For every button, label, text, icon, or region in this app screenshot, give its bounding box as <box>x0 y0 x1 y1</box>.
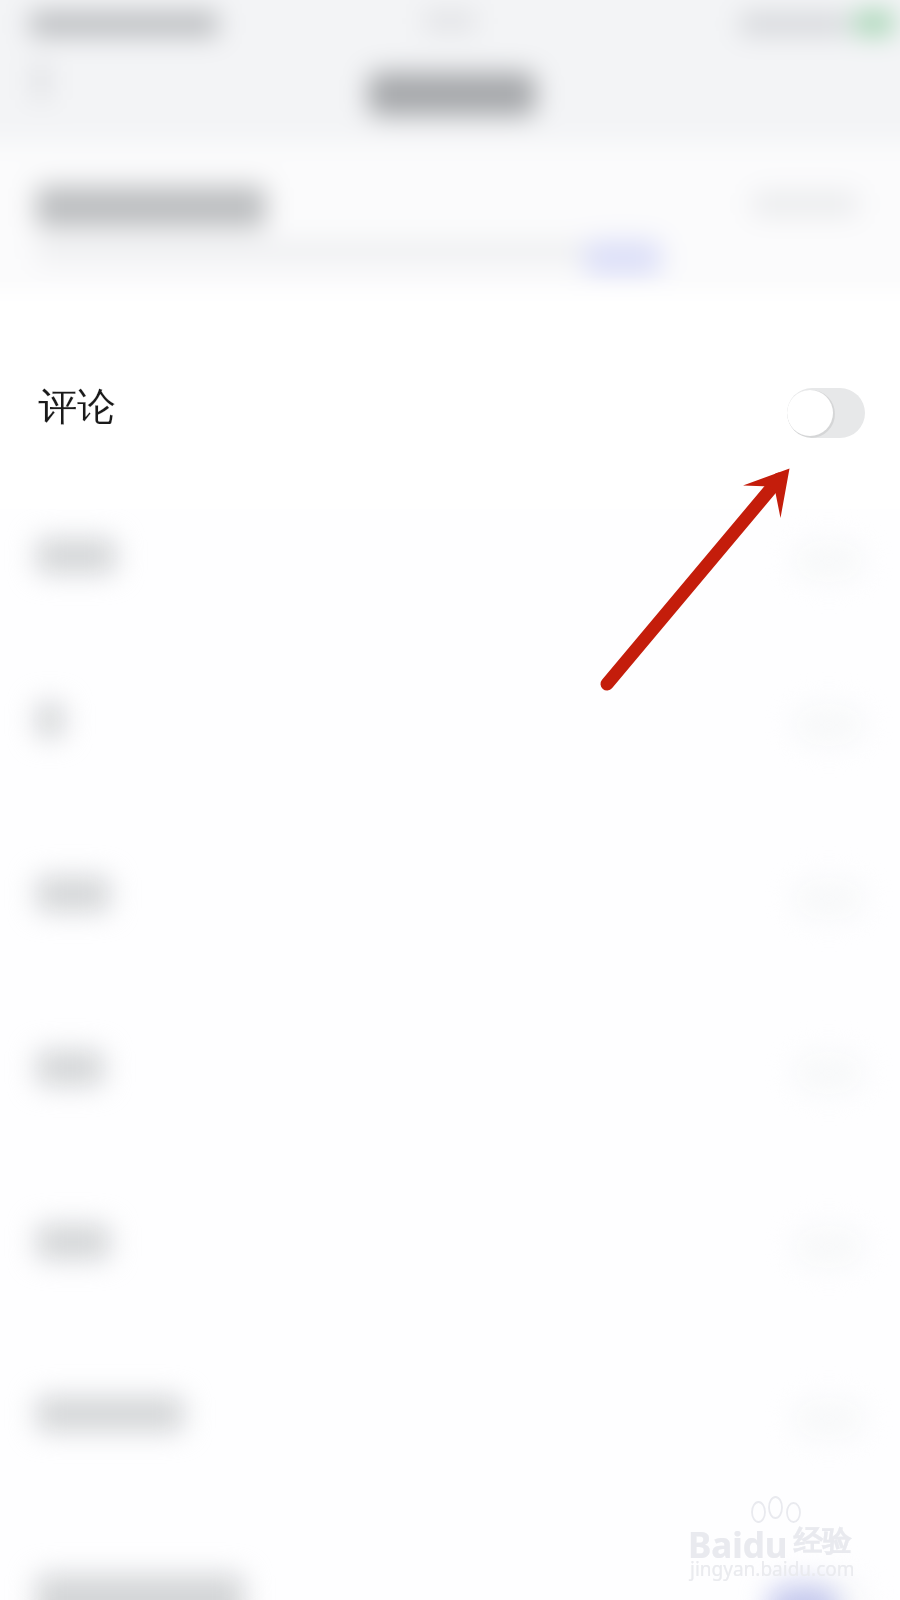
button[interactable]: Toggle comments <box>787 388 865 438</box>
staticText: jingyan.baidu.com <box>690 1556 855 1582</box>
button[interactable]: 评论 <box>0 304 900 509</box>
staticText: Baidu <box>688 1521 788 1569</box>
staticText: 经验 <box>793 1523 851 1560</box>
staticText: 评论 <box>38 382 116 431</box>
